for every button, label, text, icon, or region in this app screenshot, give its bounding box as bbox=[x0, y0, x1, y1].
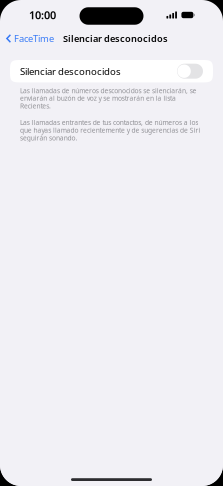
staticText: Las llamadas entrantes de tus contactos,… bbox=[20, 118, 200, 142]
staticText: Las llamadas de números desconocidos se … bbox=[20, 86, 197, 110]
staticText: 10:00 bbox=[29, 8, 56, 22]
staticText: Silenciar desconocidos bbox=[63, 32, 168, 45]
button[interactable]: Silenciar desconocidos bbox=[10, 60, 213, 82]
button[interactable]: FaceTime bbox=[0, 30, 54, 47]
staticText: Silenciar desconocidos bbox=[20, 65, 121, 78]
staticText: FaceTime bbox=[14, 32, 54, 45]
